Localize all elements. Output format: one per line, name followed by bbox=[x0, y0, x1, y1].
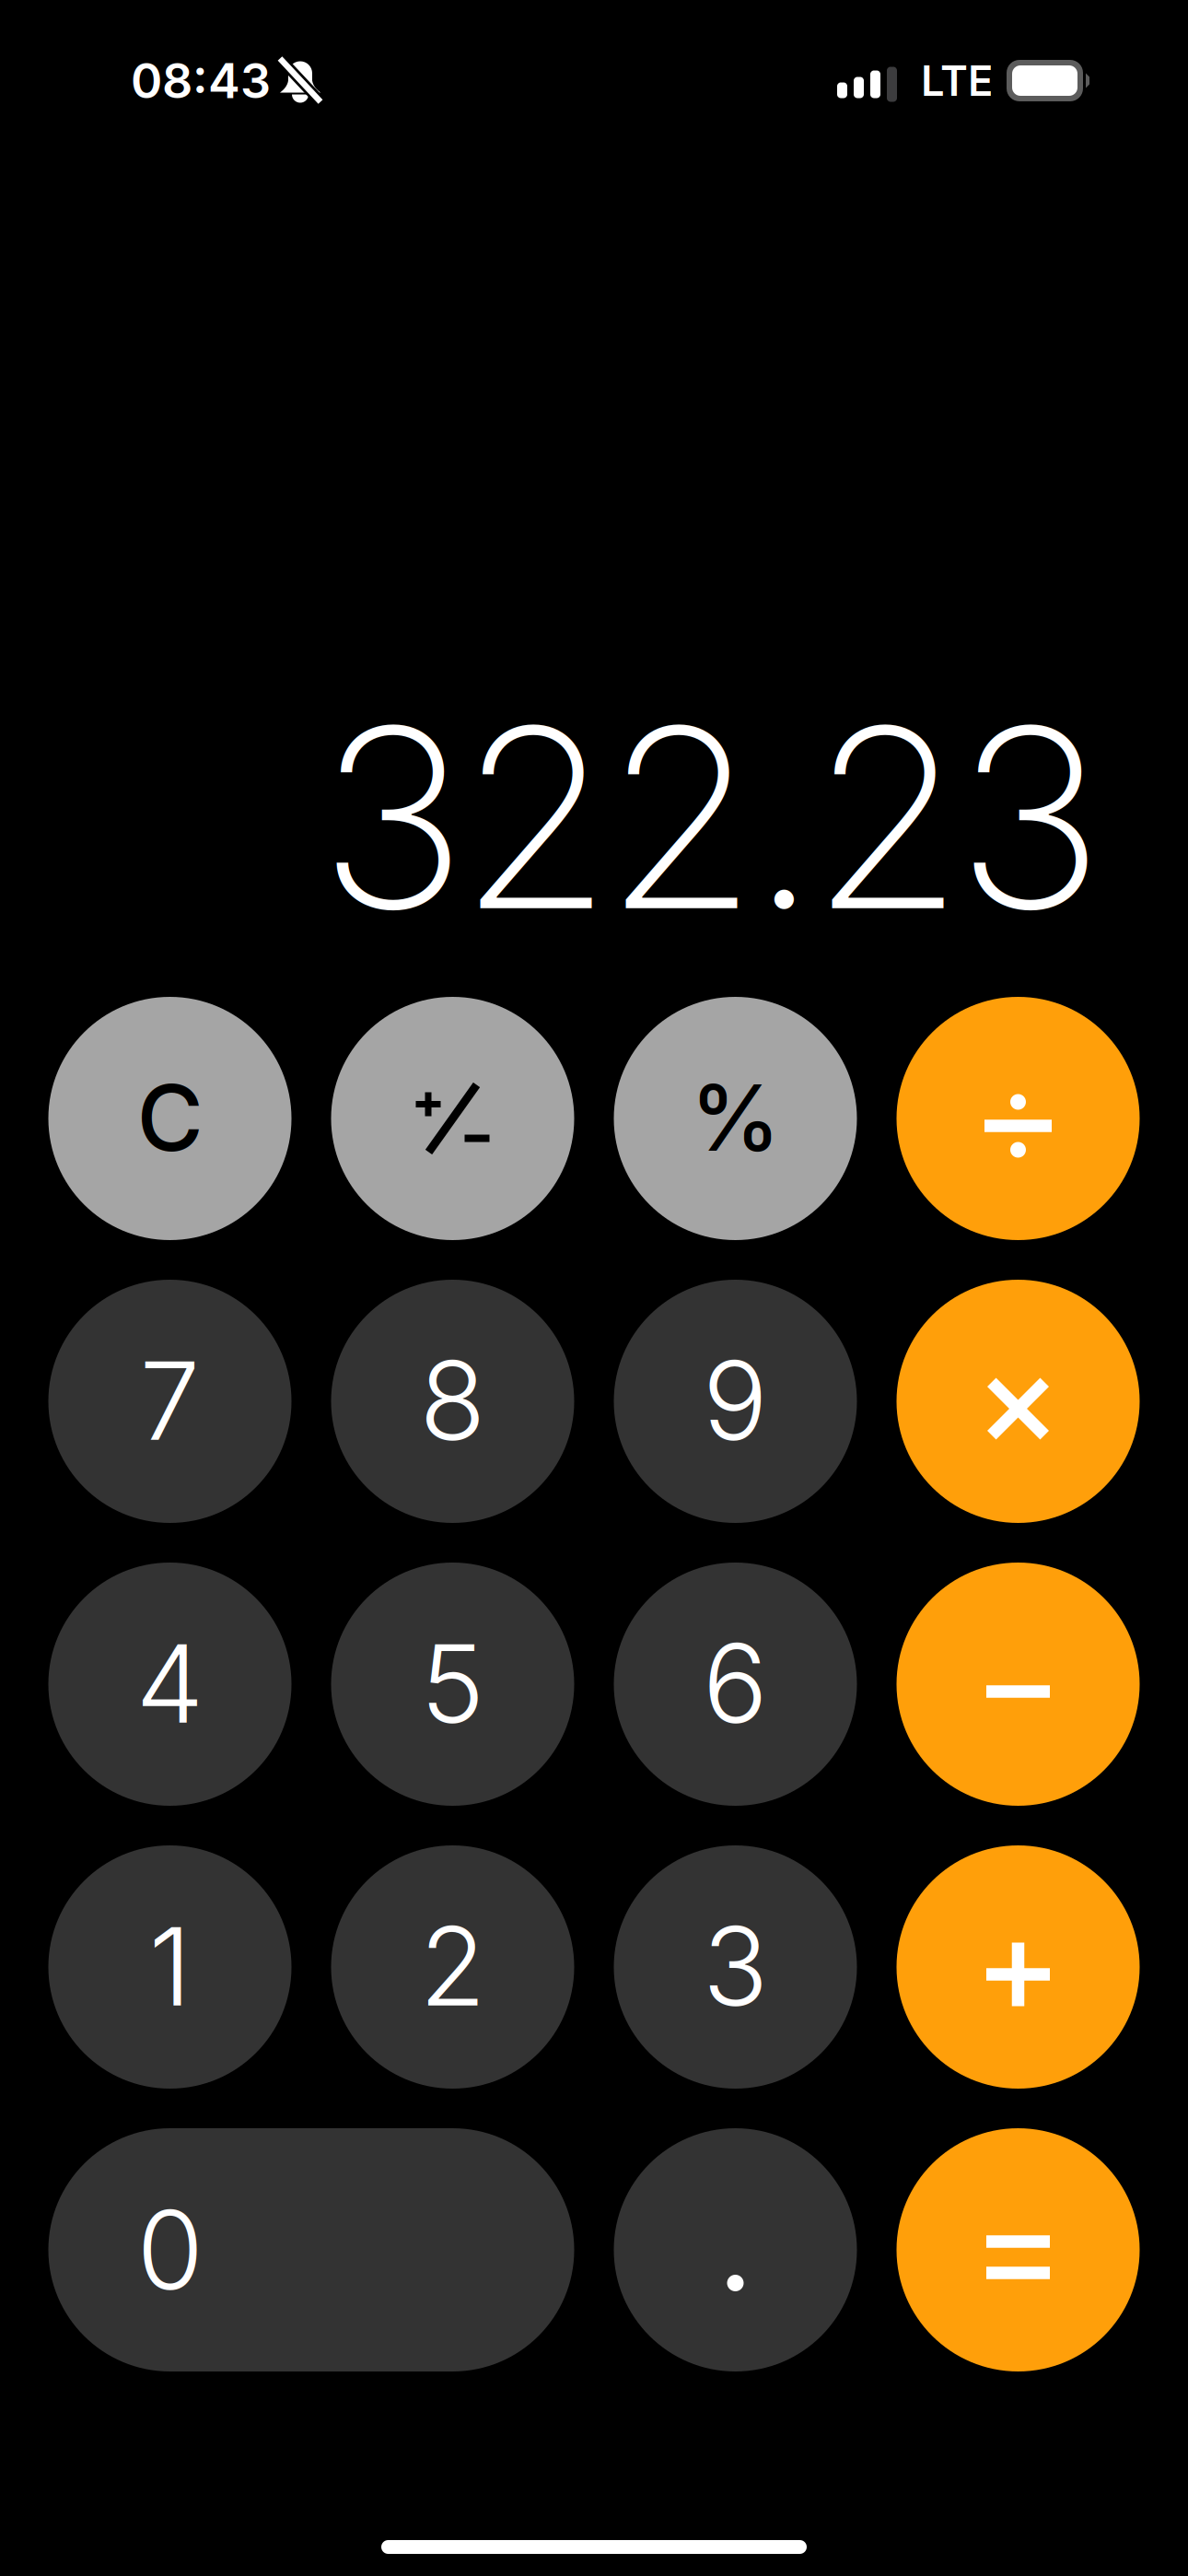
staticText: 4 bbox=[136, 1618, 204, 1749]
button[interactable]: 1 bbox=[48, 1845, 291, 2089]
staticText: 8 bbox=[419, 1335, 486, 1466]
button[interactable]: 8 bbox=[331, 1280, 574, 1523]
button[interactable]: % bbox=[614, 997, 857, 1240]
staticText: C bbox=[137, 1063, 203, 1173]
button[interactable]: Plus bbox=[897, 1845, 1140, 2089]
button[interactable]: Minus bbox=[897, 1563, 1140, 1806]
staticText: 322.23 bbox=[319, 667, 1104, 968]
button[interactable]: 5 bbox=[331, 1563, 574, 1806]
button[interactable]: 7 bbox=[48, 1280, 291, 1523]
staticText: 5 bbox=[420, 1618, 485, 1749]
button[interactable]: Decimal point bbox=[614, 2128, 857, 2371]
staticText: 2 bbox=[419, 1901, 486, 2032]
button[interactable]: Toggle sign bbox=[331, 997, 574, 1240]
staticText: LTE bbox=[921, 55, 993, 106]
button[interactable]: 9 bbox=[614, 1280, 857, 1523]
staticText: 0 bbox=[137, 2184, 203, 2315]
button[interactable]: C bbox=[48, 997, 291, 1240]
staticText: 08:43 bbox=[131, 52, 271, 110]
button[interactable]: 6 bbox=[614, 1563, 857, 1806]
button[interactable]: 0 bbox=[48, 2128, 574, 2371]
staticText: 6 bbox=[703, 1618, 768, 1749]
staticText: 3 bbox=[703, 1901, 768, 2032]
button[interactable]: 2 bbox=[331, 1845, 574, 2089]
staticText: 9 bbox=[703, 1335, 768, 1466]
button[interactable]: Multiply bbox=[897, 1280, 1140, 1523]
staticText: 1 bbox=[149, 1901, 191, 2032]
button[interactable]: 4 bbox=[48, 1563, 291, 1806]
button[interactable]: Divide bbox=[897, 997, 1140, 1240]
staticText: 7 bbox=[140, 1335, 200, 1466]
staticText: % bbox=[690, 1063, 780, 1173]
button[interactable]: Equals bbox=[897, 2128, 1140, 2371]
button[interactable]: 3 bbox=[614, 1845, 857, 2089]
